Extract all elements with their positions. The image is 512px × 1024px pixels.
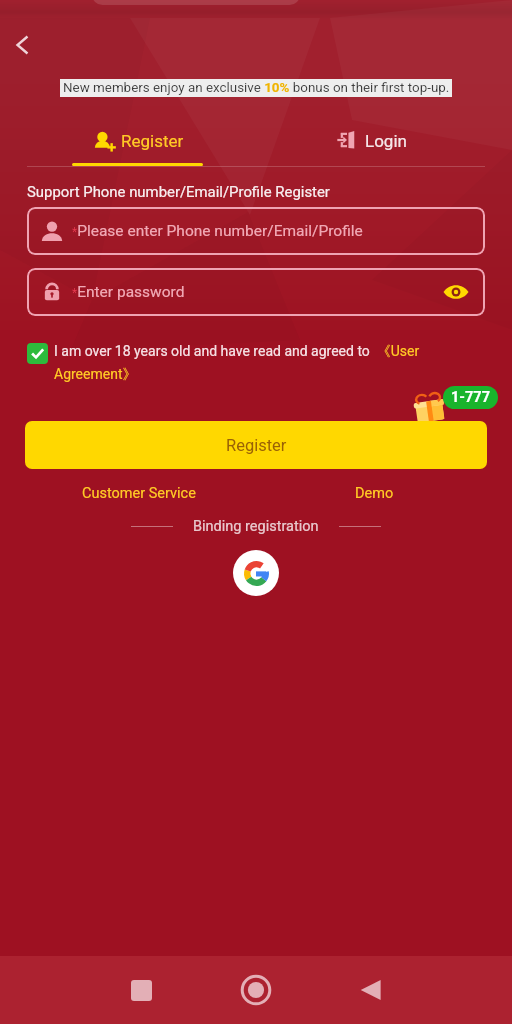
button[interactable]: *Please enter Phone number/Email/Profile bbox=[27, 207, 485, 255]
button[interactable]: Register bbox=[25, 421, 487, 469]
button[interactable]: Back bbox=[348, 966, 396, 1014]
button[interactable]: Demo bbox=[334, 482, 414, 504]
staticText: Register bbox=[121, 131, 184, 151]
button[interactable]: Login bbox=[336, 126, 407, 156]
staticText: Login bbox=[365, 131, 407, 151]
button[interactable]: Register bbox=[72, 126, 184, 156]
button[interactable]: Agree to terms bbox=[27, 343, 48, 364]
button[interactable]: Back bbox=[0, 23, 44, 67]
staticText: Binding registration bbox=[193, 518, 319, 535]
button[interactable]: Recents bbox=[117, 966, 165, 1014]
staticText: New members enjoy an exclusive 10% bonus… bbox=[63, 80, 450, 96]
button[interactable]: Show password bbox=[441, 277, 471, 307]
staticText: *Enter password bbox=[72, 283, 185, 301]
staticText: Register bbox=[226, 436, 287, 455]
staticText: *Please enter Phone number/Email/Profile bbox=[72, 222, 363, 240]
button[interactable]: Home bbox=[232, 966, 280, 1014]
staticText: Support Phone number/Email/Profile Regis… bbox=[27, 183, 330, 200]
staticText: Customer Service bbox=[82, 485, 196, 502]
button[interactable]: Sign in with Google bbox=[233, 550, 279, 596]
button[interactable]: Customer Service bbox=[60, 482, 218, 504]
staticText: 1-777 bbox=[451, 389, 490, 406]
staticText: I am over 18 years old and have read and… bbox=[54, 343, 454, 383]
button[interactable]: I am over 18 years old and have read and… bbox=[54, 343, 454, 383]
staticText: Demo bbox=[355, 485, 394, 502]
button[interactable]: *Enter password bbox=[27, 268, 485, 316]
